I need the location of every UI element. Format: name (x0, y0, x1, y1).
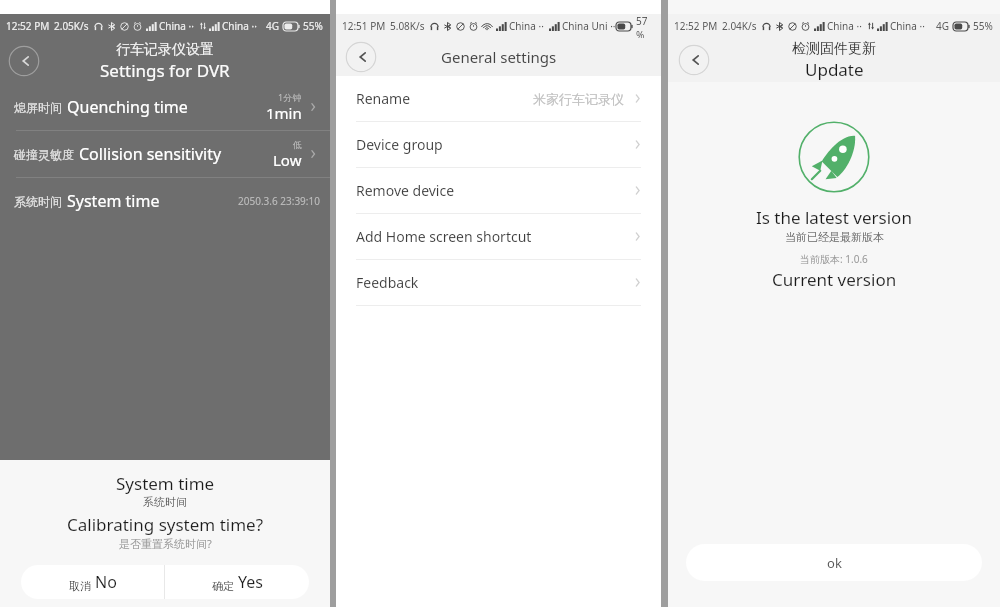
button[interactable]: ok (686, 544, 982, 581)
staticText: 55% (973, 19, 993, 33)
staticText: China ·· (222, 19, 257, 33)
staticText: 当前已经是最新版本 (785, 230, 884, 244)
staticText: 当前版本: 1.0.6 (800, 252, 868, 266)
staticText: Update (805, 58, 864, 81)
staticText: 1分钟 (278, 91, 302, 103)
staticText: Feedback (356, 273, 419, 292)
staticText: Remove device (356, 181, 455, 200)
button[interactable]: 熄屏时间 (0, 84, 330, 130)
staticText: China Uni ·· (562, 19, 616, 33)
button[interactable]: Back (678, 44, 710, 76)
staticText: 熄屏时间 (14, 100, 62, 115)
staticText: Collision sensitivity (79, 143, 222, 165)
staticText: 2.05K/s (54, 19, 89, 33)
staticText: 1min (266, 103, 302, 123)
staticText: Low (273, 150, 302, 170)
staticText: 12:52 PM (6, 19, 50, 33)
staticText: 55% (303, 19, 323, 33)
staticText: 2.04K/s (722, 19, 757, 33)
staticText: China ·· (159, 19, 194, 33)
staticText: 4G (936, 19, 949, 33)
staticText: China ·· (827, 19, 862, 33)
staticText: 57% (636, 14, 654, 38)
staticText: Quenching time (67, 96, 188, 118)
staticText: Is the latest version (756, 206, 912, 229)
button[interactable]: Rename (336, 76, 661, 121)
button[interactable]: 取消 (21, 565, 164, 599)
button[interactable]: 碰撞灵敏度 (0, 131, 330, 177)
staticText: 米家行车记录仪 (533, 91, 624, 107)
staticText: 是否重置系统时间? (119, 536, 212, 551)
staticText: 4G (266, 19, 279, 33)
staticText: 低 (293, 139, 302, 150)
staticText: China ·· (890, 19, 925, 33)
staticText: 12:52 PM (674, 19, 718, 33)
button[interactable]: Device group (336, 122, 661, 167)
staticText: 系统时间 (143, 495, 187, 509)
staticText: 取消 (69, 579, 91, 593)
staticText: Settings for DVR (100, 59, 230, 82)
staticText: 5.08K/s (390, 19, 425, 33)
staticText: China ·· (509, 19, 544, 33)
staticText: 系统时间 (14, 194, 62, 209)
staticText: Yes (238, 571, 263, 593)
staticText: 确定 (212, 579, 234, 593)
button[interactable]: 系统时间 (0, 178, 330, 224)
button[interactable]: Back (8, 45, 40, 77)
staticText: 碰撞灵敏度 (14, 147, 74, 162)
staticText: Add Home screen shortcut (356, 227, 532, 246)
staticText: 检测固件更新 (792, 40, 876, 58)
staticText: Current version (772, 268, 897, 291)
staticText: System time (67, 190, 160, 212)
staticText: 12:51 PM (342, 19, 386, 33)
staticText: ok (827, 554, 842, 572)
button[interactable]: 确定 (165, 565, 309, 599)
staticText: Device group (356, 135, 443, 154)
staticText: Calibrating system time? (67, 513, 264, 536)
staticText: No (95, 571, 117, 593)
staticText: Rename (356, 89, 411, 108)
button[interactable]: Back (345, 41, 377, 73)
button[interactable]: Feedback (336, 260, 661, 305)
button[interactable]: Remove device (336, 168, 661, 213)
staticText: System time (116, 472, 215, 495)
staticText: 2050.3.6 23:39:10 (238, 194, 320, 208)
button[interactable]: Add Home screen shortcut (336, 214, 661, 259)
staticText: General settings (441, 47, 557, 67)
staticText: 行车记录仪设置 (116, 41, 214, 59)
